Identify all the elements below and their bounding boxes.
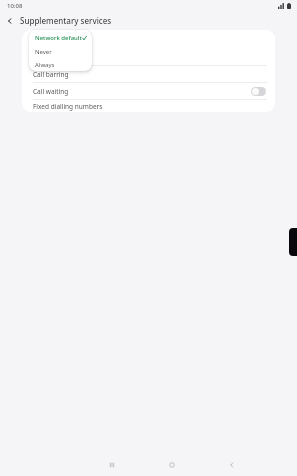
staticText: Never bbox=[35, 48, 52, 56]
staticText: Call waiting bbox=[33, 87, 69, 96]
button[interactable]: Always bbox=[29, 58, 92, 71]
button[interactable]: Call waiting bbox=[22, 83, 275, 99]
button[interactable]: Call barring bbox=[22, 66, 275, 82]
staticText: Supplementary services bbox=[20, 15, 112, 26]
button[interactable]: Never bbox=[29, 45, 92, 58]
button[interactable]: Network default bbox=[29, 30, 92, 45]
staticText: Fixed dialling numbers bbox=[33, 102, 103, 111]
button[interactable]: Edge panel handle bbox=[289, 228, 297, 256]
staticText: Always bbox=[35, 61, 55, 69]
button[interactable]: Recents bbox=[101, 454, 123, 476]
button[interactable]: Call waiting toggle bbox=[251, 87, 266, 96]
staticText: Call barring bbox=[33, 70, 69, 79]
button[interactable]: Home bbox=[161, 454, 183, 476]
button[interactable]: Back bbox=[3, 14, 16, 27]
button[interactable]: Back bbox=[221, 454, 243, 476]
staticText: Network default bbox=[35, 34, 82, 42]
button[interactable]: Fixed dialling numbers bbox=[22, 100, 275, 112]
staticText: 10:08 bbox=[7, 2, 23, 10]
